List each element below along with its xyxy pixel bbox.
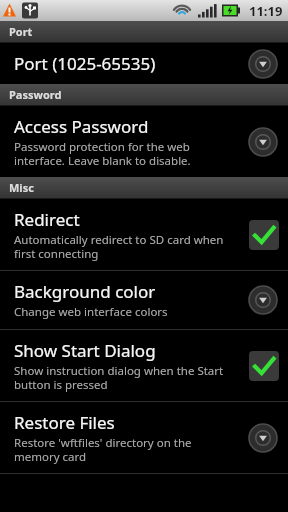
button[interactable]: Open [247, 48, 279, 80]
button[interactable]: Checkbox, checked [249, 351, 279, 381]
staticText: Show instruction dialog when the Start b… [14, 363, 224, 392]
staticText: Redirect [14, 208, 80, 231]
button[interactable]: Port (1025-65535) [0, 43, 288, 84]
button[interactable]: Open [247, 284, 279, 316]
staticText: Restore 'wftfiles' directory on the memo… [14, 435, 192, 464]
staticText: Port [9, 24, 33, 39]
button[interactable]: Access Password [0, 106, 288, 177]
staticText: Access Password [14, 115, 149, 138]
button[interactable]: Open [247, 126, 279, 158]
button[interactable]: Show Start Dialog [0, 330, 288, 401]
button[interactable]: Redirect [0, 199, 288, 270]
button[interactable]: Checkbox, checked [249, 220, 279, 250]
staticText: Automatically redirect to SD card when f… [14, 232, 224, 261]
staticText: Port (1025-65535) [14, 52, 156, 75]
staticText: Misc [9, 180, 34, 195]
staticText: Password [9, 87, 62, 102]
staticText: Change web interface colors [14, 304, 168, 320]
button[interactable]: Restore Files [0, 402, 288, 473]
staticText: Password protection for the web interfac… [14, 139, 191, 168]
staticText: Background color [14, 280, 156, 303]
staticText: Restore Files [14, 411, 115, 434]
staticText: Show Start Dialog [14, 339, 156, 362]
button[interactable]: Open [247, 422, 279, 454]
button[interactable]: Background color [0, 271, 288, 329]
staticText: 11:19 [249, 2, 283, 20]
